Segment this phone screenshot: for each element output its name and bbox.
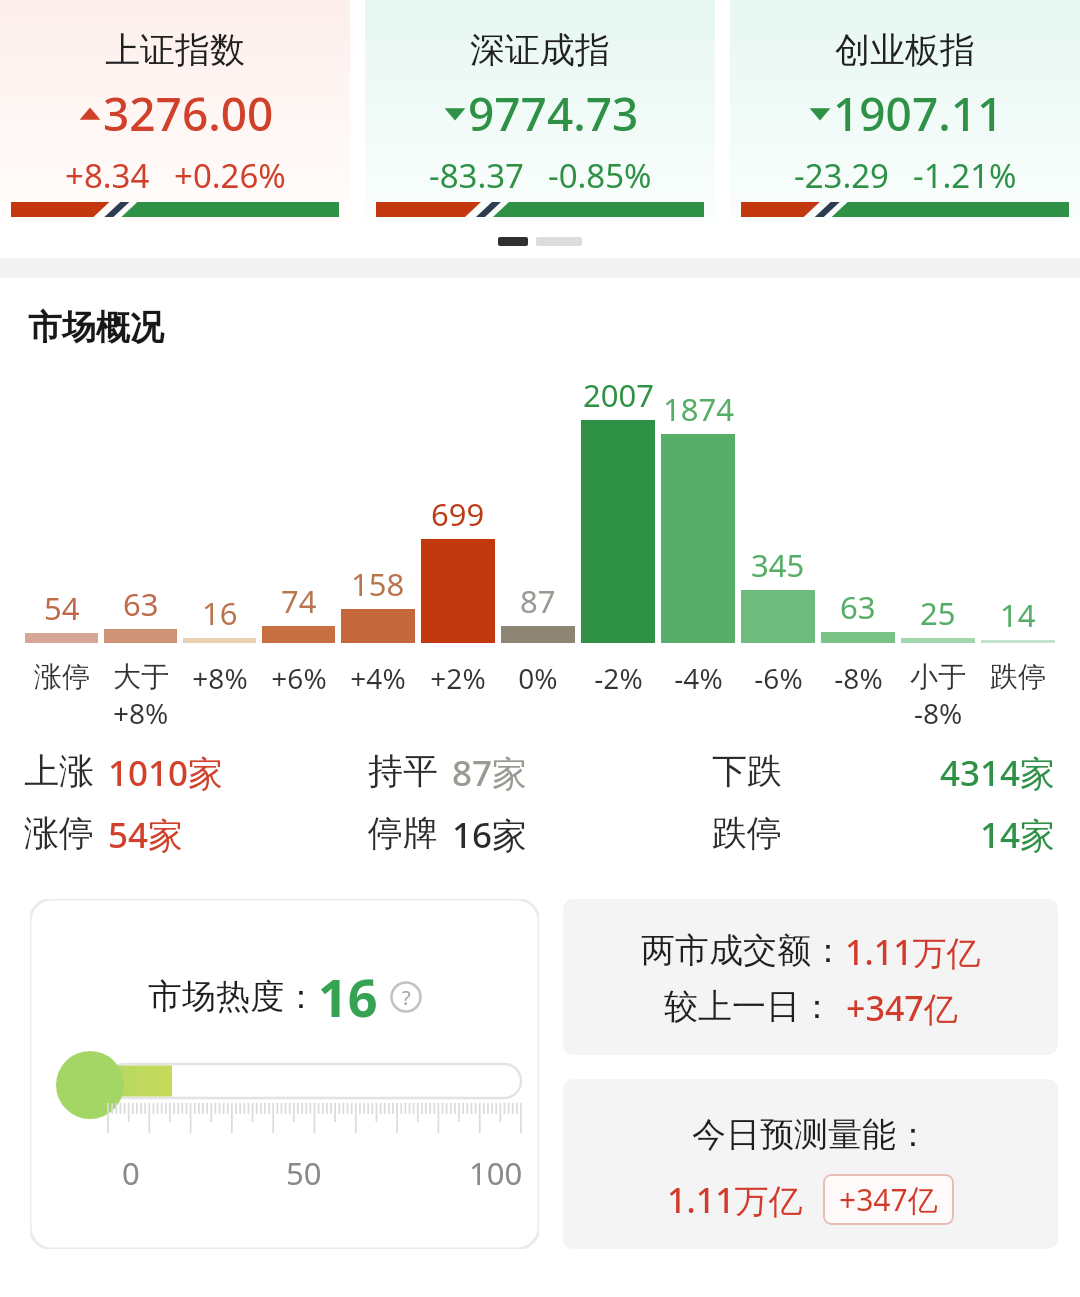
- staticText: +347亿: [839, 1179, 938, 1220]
- staticText: 跌停: [990, 659, 1046, 694]
- button[interactable]: 25: [900, 365, 976, 735]
- staticText: 跌停: [712, 811, 782, 855]
- staticText: +8%: [192, 659, 248, 697]
- staticText: ?: [402, 984, 411, 1011]
- button[interactable]: 54: [24, 365, 99, 735]
- staticText: 16: [318, 961, 378, 1032]
- staticText: 16家: [452, 811, 528, 859]
- staticText: 54: [44, 587, 80, 629]
- staticText: 3276.00: [103, 82, 274, 145]
- staticText: 14: [1000, 594, 1036, 636]
- staticText: 1010家: [108, 749, 224, 797]
- staticText: 持平: [368, 749, 438, 793]
- button[interactable]: 今日预测量能：: [563, 1079, 1058, 1249]
- staticText: 较上一日：: [664, 985, 834, 1028]
- staticText: 63: [123, 583, 159, 625]
- staticText: +8.34: [65, 153, 150, 198]
- staticText: -83.37: [429, 153, 524, 198]
- staticText: -0.85%: [548, 153, 652, 198]
- button[interactable]: 63: [103, 365, 178, 735]
- staticText: -8%: [834, 659, 883, 697]
- staticText: 创业板指: [835, 28, 975, 72]
- button[interactable]: 63: [820, 365, 896, 735]
- button[interactable]: 市场热度：: [30, 899, 539, 1249]
- staticText: 1907.11: [833, 82, 1004, 145]
- staticText: +347亿: [846, 985, 958, 1031]
- button[interactable]: 158: [340, 365, 416, 735]
- staticText: 0: [122, 1152, 140, 1194]
- button[interactable]: 87: [500, 365, 576, 735]
- staticText: 上涨: [24, 749, 94, 793]
- staticText: 今日预测量能：: [692, 1113, 930, 1156]
- staticText: 上证指数: [105, 28, 245, 72]
- staticText: -1.21%: [913, 153, 1017, 198]
- staticText: 大于: [113, 659, 169, 694]
- staticText: 25: [920, 592, 956, 634]
- staticText: -23.29: [794, 153, 889, 198]
- button[interactable]: 两市成交额：: [563, 899, 1058, 1055]
- button[interactable]: 345: [740, 365, 816, 735]
- staticText: +4%: [350, 659, 406, 697]
- staticText: +6%: [271, 659, 327, 697]
- staticText: 市场概况: [28, 306, 164, 349]
- staticText: -6%: [754, 659, 803, 697]
- staticText: 0%: [518, 659, 558, 697]
- staticText: 停牌: [368, 811, 438, 855]
- staticText: 小于: [910, 659, 966, 694]
- staticText: 9774.73: [468, 82, 639, 145]
- staticText: 54家: [108, 811, 184, 859]
- staticText: 699: [431, 493, 485, 535]
- button[interactable]: 创业板指: [730, 0, 1080, 222]
- staticText: +2%: [430, 659, 486, 697]
- staticText: +8%: [113, 694, 169, 732]
- button[interactable]: 2007: [580, 365, 656, 735]
- staticText: 100: [469, 1152, 523, 1194]
- staticText: 4314家: [940, 749, 1056, 797]
- staticText: 345: [751, 544, 805, 586]
- staticText: 1874: [663, 388, 734, 430]
- staticText: -2%: [594, 659, 643, 697]
- staticText: 深证成指: [470, 28, 610, 72]
- staticText: 16: [202, 592, 238, 634]
- staticText: -4%: [674, 659, 723, 697]
- staticText: +0.26%: [174, 153, 286, 198]
- button[interactable]: 上证指数: [0, 0, 350, 222]
- button[interactable]: 14: [980, 365, 1056, 735]
- staticText: 158: [351, 563, 405, 605]
- staticText: -8%: [914, 694, 963, 732]
- button[interactable]: 699: [420, 365, 496, 735]
- button[interactable]: 深证成指: [365, 0, 715, 222]
- staticText: 涨停: [34, 659, 90, 694]
- staticText: 涨停: [24, 811, 94, 855]
- button[interactable]: 1874: [660, 365, 736, 735]
- staticText: 50: [286, 1152, 322, 1194]
- staticText: 1.11万亿: [667, 1177, 803, 1223]
- staticText: 1.11万亿: [845, 929, 981, 975]
- staticText: 2007: [583, 374, 654, 416]
- staticText: 63: [840, 586, 876, 628]
- staticText: 87家: [452, 749, 528, 797]
- button[interactable]: 市场热度说明: [390, 981, 422, 1013]
- button[interactable]: 16: [182, 365, 257, 735]
- staticText: 下跌: [712, 749, 782, 793]
- button[interactable]: 74: [261, 365, 336, 735]
- staticText: 市场热度：: [148, 975, 318, 1018]
- staticText: 74: [281, 580, 317, 622]
- staticText: 87: [520, 580, 556, 622]
- staticText: 两市成交额：: [641, 929, 845, 972]
- staticText: 14家: [980, 811, 1056, 859]
